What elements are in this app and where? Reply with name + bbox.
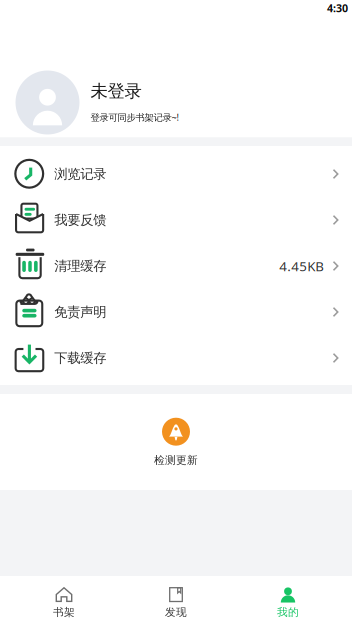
button[interactable]: 书架 (8, 576, 120, 626)
staticText: 书架 (53, 606, 75, 619)
staticText: 4:30 (327, 1, 348, 15)
staticText: 未登录 (90, 81, 141, 102)
staticText: 我要反馈 (54, 212, 106, 228)
staticText: 发现 (165, 606, 187, 619)
button[interactable]: 清理缓存 (0, 243, 352, 289)
staticText: 检测更新 (154, 454, 198, 467)
staticText: 登录可同步书架记录~! (90, 111, 179, 123)
button[interactable]: 我要反馈 (0, 197, 352, 243)
staticText: 4.45KB (279, 257, 324, 275)
button[interactable]: 检测更新 (0, 394, 352, 490)
staticText: 免责声明 (54, 304, 106, 320)
button[interactable]: 我的 (232, 576, 344, 626)
staticText: 浏览记录 (54, 166, 106, 182)
button[interactable]: 浏览记录 (0, 151, 352, 197)
button[interactable]: 免责声明 (0, 289, 352, 335)
button[interactable]: 发现 (120, 576, 232, 626)
staticText: 下载缓存 (54, 350, 106, 366)
staticText: 清理缓存 (54, 258, 106, 274)
button[interactable]: 下载缓存 (0, 335, 352, 381)
staticText: 我的 (277, 606, 299, 619)
